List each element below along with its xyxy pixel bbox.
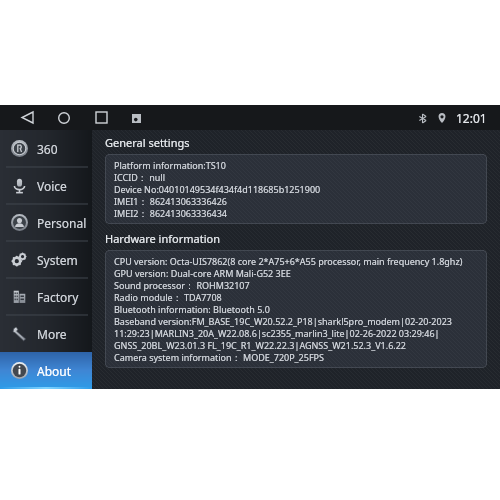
staticText: System [37,252,78,268]
button[interactable]: Back [14,105,40,130]
button[interactable]: 360 [0,130,92,167]
staticText: Voice [37,178,67,194]
staticText: GPU version: Dual-core ARM Mali-G52 3EE [114,267,291,279]
staticText: Camera system information： MODE_720P_25F… [114,351,324,363]
staticText: Factory [37,289,79,305]
staticText: More [37,326,67,342]
staticText: 11:29:23|MARLIN3_20A_W22.08.6|sc2355_mar… [114,327,440,339]
button[interactable]: Voice [0,167,92,204]
button[interactable]: Platform information:TS10 [105,154,487,224]
staticText: 12:01 [456,110,487,126]
staticText: ICCID： null [114,171,165,183]
staticText: IMEI1： 862413063336426 [114,195,227,207]
button[interactable]: About [0,352,92,389]
button[interactable]: Screenshot [125,107,147,129]
staticText: Baseband version:FM_BASE_19C_W20.52.2_P1… [114,315,452,327]
staticText: General settings [105,135,190,150]
button[interactable]: Recent apps [88,105,114,130]
staticText: Personal [37,215,87,231]
button[interactable]: More [0,315,92,352]
staticText: Platform information:TS10 [114,159,226,171]
staticText: Device No:04010149534f434f4d118685b12519… [114,183,321,195]
staticText: 360 [37,141,58,157]
button[interactable]: System [0,241,92,278]
button[interactable]: Personal [0,204,92,241]
staticText: About [37,363,72,379]
button[interactable]: Home [51,105,77,130]
button[interactable]: CPU version: Octa-UIS7862(8 core 2*A75+6… [105,250,487,368]
staticText: Hardware information [105,231,220,246]
staticText: Bluetooth information: Bluetooth 5.0 [114,303,270,315]
staticText: GNSS_20BL_W23.01.3 FL_19C_R1_W22.22.3|AG… [114,339,406,351]
staticText: Radio module： TDA7708 [114,291,222,303]
button[interactable]: Factory [0,278,92,315]
staticText: Sound processor： ROHM32107 [114,279,250,291]
staticText: CPU version: Octa-UIS7862(8 core 2*A75+6… [114,255,463,267]
staticText: IMEI2： 862413063336434 [114,207,227,219]
